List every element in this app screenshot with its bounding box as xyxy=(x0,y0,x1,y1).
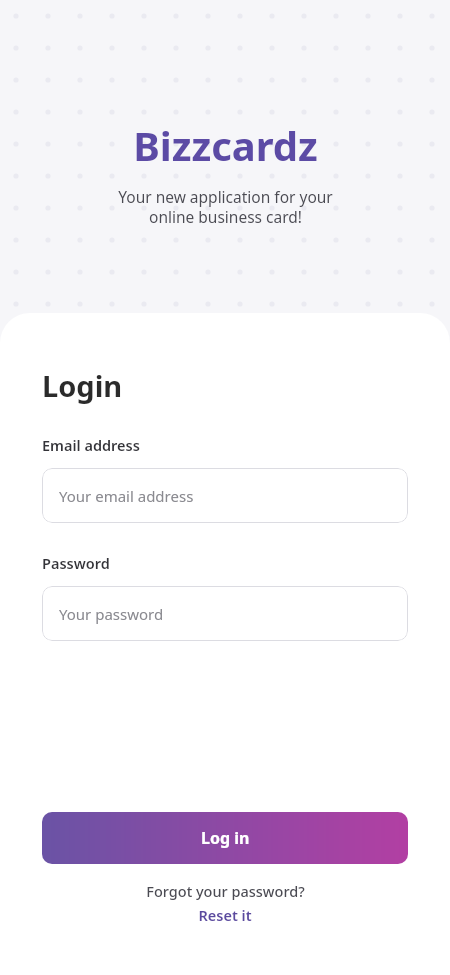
staticText: Email address xyxy=(42,435,140,455)
staticText: Your password xyxy=(59,604,164,624)
button[interactable]: Forgot your password? xyxy=(42,881,408,925)
staticText: Bizzcardz xyxy=(133,118,318,172)
staticText: Log in xyxy=(201,827,250,849)
staticText: Login xyxy=(42,366,123,405)
button[interactable]: Your email address xyxy=(42,468,408,523)
button[interactable]: Your password xyxy=(42,586,408,641)
staticText: Your email address xyxy=(59,486,194,506)
button[interactable]: Log in xyxy=(42,812,408,864)
staticText: Forgot your password? xyxy=(146,881,305,901)
staticText: Password xyxy=(42,553,110,573)
staticText: Your new application for your online bus… xyxy=(118,186,333,228)
staticText: Reset it xyxy=(198,905,252,925)
